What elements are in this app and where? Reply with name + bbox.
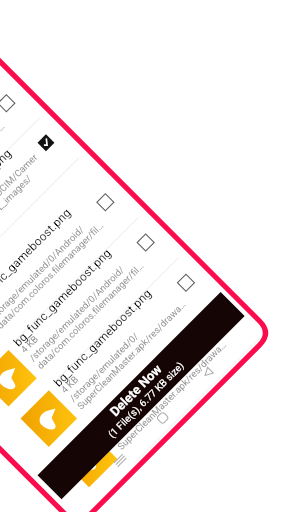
staticText: bg_func_gameboost.png: [91, 327, 194, 430]
staticText: a/.thumbnails/1000L_images/400L_: [0, 156, 50, 272]
button[interactable]: bg_func_gameboost.png: [0, 210, 189, 444]
staticText: /storage/emulated/0/Android/: [0, 223, 86, 323]
button[interactable]: bg_func_gameboost.png: [35, 291, 269, 512]
staticText: /storage/emulated/0/Android/: [27, 264, 127, 363]
staticText: 4 KB: [18, 333, 40, 355]
staticText: bg_func_gameboost.png: [11, 246, 114, 349]
staticText: data/com.coloros.filemanager/fil…: [35, 260, 146, 371]
staticText: /storage/emulated/0/: [107, 370, 181, 444]
staticText: bg_func_gameboost.png: [0, 206, 73, 309]
staticText: /storage/emulated/0/DCIM/Camer: [0, 151, 40, 264]
staticText: /storage/emulated/0/: [67, 330, 141, 404]
button[interactable]: bg_func_gameboost.png: [0, 31, 10, 265]
staticText: data/com.coloros.filemanager/fil…: [0, 220, 105, 331]
button[interactable]: bg_func_gameboost.png: [0, 170, 148, 404]
button[interactable]: Select file: [218, 315, 235, 332]
button[interactable]: bg_func_gameboost.png: [0, 71, 49, 305]
button[interactable]: bg_func_gameboost.png: [0, 110, 89, 344]
staticText: bg_func_gameboost.png: [0, 146, 14, 250]
button[interactable]: Delete Now: [37, 292, 245, 499]
button[interactable]: Select file: [177, 274, 194, 291]
button[interactable]: Select file: [137, 234, 154, 251]
button[interactable]: Select file: [0, 95, 15, 112]
staticText: (1 File(s), 6.77 KB size): [106, 360, 187, 440]
button[interactable]: bg_func_gameboost.png: [0, 250, 229, 484]
button[interactable]: Back: [192, 357, 223, 388]
button[interactable]: Home: [147, 402, 178, 433]
button[interactable]: Recents: [105, 445, 136, 476]
staticText: 4 KB: [99, 414, 121, 435]
button[interactable]: Select file: [37, 134, 54, 151]
staticText: data/com.coloros.filemanager/fil…: [0, 121, 6, 232]
button[interactable]: Select file: [97, 194, 114, 211]
staticText: 4 KB: [59, 373, 81, 395]
staticText: Delete Now: [107, 361, 165, 419]
staticText: SuperCleanMaster.apk/res/drawa…: [75, 298, 188, 411]
staticText: SuperCleanMaster.apk/res/drawa…: [115, 339, 228, 452]
staticText: bg_func_gameboost.png: [51, 286, 154, 390]
